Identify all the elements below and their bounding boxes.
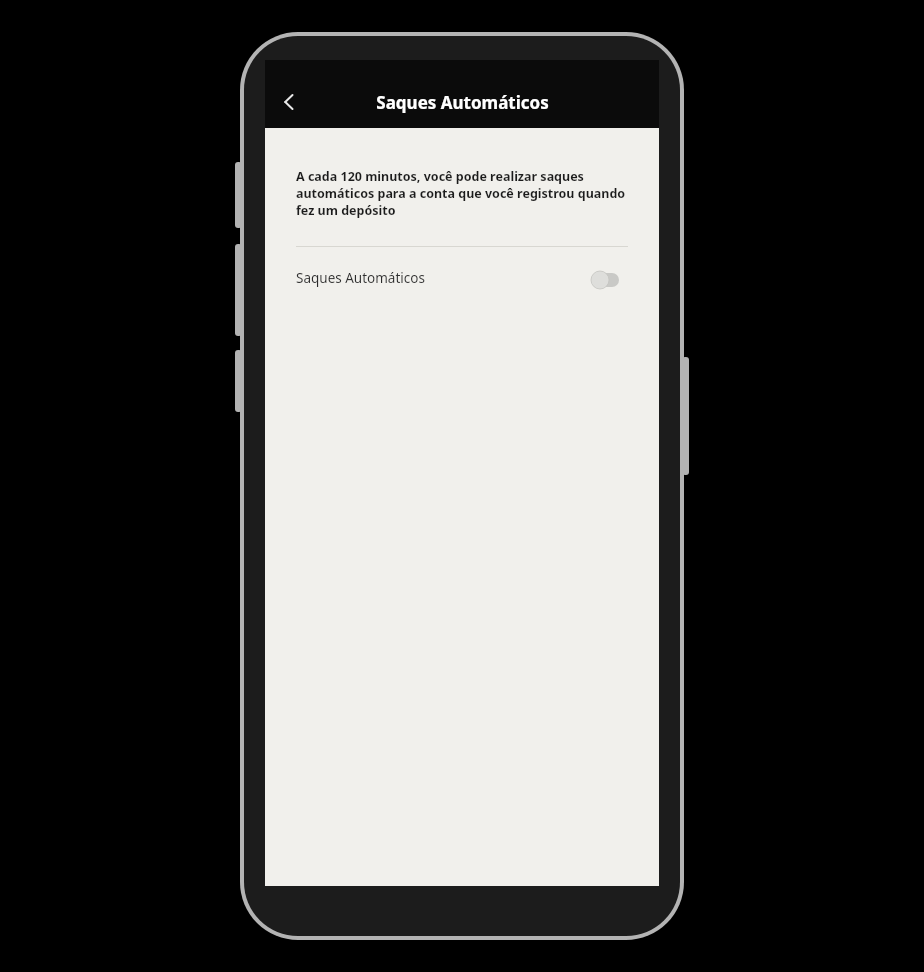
button[interactable]: Back: [267, 80, 311, 124]
staticText: Saques Automáticos: [296, 269, 600, 287]
button[interactable]: Saques Automáticos: [296, 247, 628, 309]
staticText: A cada 120 minutos, você pode realizar s…: [296, 168, 628, 219]
staticText: Saques Automáticos: [376, 91, 549, 114]
